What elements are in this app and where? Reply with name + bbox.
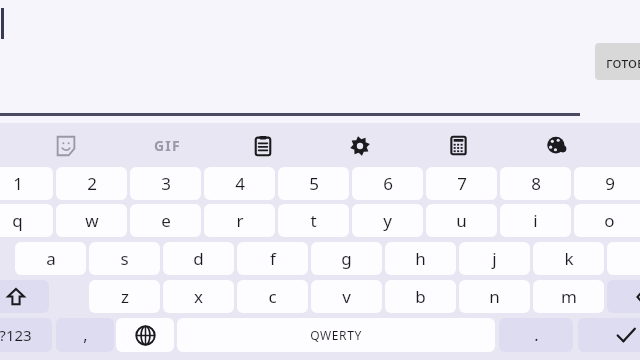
button[interactable]: x xyxy=(163,280,234,313)
button[interactable]: e xyxy=(130,204,201,237)
staticText: готово xyxy=(606,52,640,72)
staticText: z xyxy=(121,285,129,308)
button[interactable]: 1 xyxy=(0,167,53,200)
staticText: m xyxy=(561,285,577,308)
button[interactable]: Clipboard xyxy=(241,123,285,168)
button[interactable]: w xyxy=(56,204,127,237)
staticText: h xyxy=(415,247,426,270)
button[interactable]: f xyxy=(237,242,308,275)
button[interactable]: s xyxy=(89,242,160,275)
staticText: c xyxy=(268,285,277,308)
staticText: 1 xyxy=(13,172,23,195)
button[interactable]: GIF xyxy=(145,123,189,168)
staticText: GIF xyxy=(154,136,181,155)
button[interactable]: z xyxy=(89,280,160,313)
staticText: x xyxy=(194,285,203,308)
staticText: q xyxy=(12,209,23,232)
button[interactable]: Number pad xyxy=(436,123,480,168)
button[interactable]: 7 xyxy=(426,167,497,200)
button[interactable]: u xyxy=(426,204,497,237)
staticText: d xyxy=(193,247,204,270)
staticText: g xyxy=(341,247,352,270)
button[interactable]: Shift xyxy=(0,280,49,313)
button[interactable]: Enter xyxy=(578,318,640,352)
button[interactable]: 9 xyxy=(574,167,640,200)
button[interactable]: 8 xyxy=(500,167,571,200)
button[interactable]: i xyxy=(500,204,571,237)
button[interactable]: m xyxy=(533,280,604,313)
staticText: j xyxy=(492,247,497,270)
staticText: w xyxy=(85,209,99,232)
staticText: 2 xyxy=(87,172,97,195)
staticText: QWERTY xyxy=(310,327,362,343)
staticText: r xyxy=(236,209,244,232)
staticText: o xyxy=(604,209,615,232)
button[interactable]: Theme xyxy=(534,123,578,168)
button[interactable]: Space xyxy=(177,318,495,352)
staticText: 6 xyxy=(383,172,393,195)
staticText: 4 xyxy=(235,172,245,195)
button[interactable]: q xyxy=(0,204,53,237)
button[interactable]: v xyxy=(311,280,382,313)
button[interactable]: h xyxy=(385,242,456,275)
button[interactable]: o xyxy=(574,204,640,237)
button[interactable]: Comma xyxy=(56,318,114,352)
staticText: e xyxy=(161,209,171,232)
button[interactable]: n xyxy=(459,280,530,313)
staticText: 5 xyxy=(309,172,319,195)
staticText: 3 xyxy=(161,172,171,195)
staticText: ?123 xyxy=(0,325,32,345)
button[interactable]: 6 xyxy=(352,167,423,200)
button[interactable]: d xyxy=(163,242,234,275)
button[interactable]: Stickers xyxy=(44,123,88,168)
button[interactable]: Backspace xyxy=(607,280,640,313)
staticText: v xyxy=(342,285,351,308)
staticText: . xyxy=(534,324,539,346)
button[interactable]: c xyxy=(237,280,308,313)
button[interactable]: j xyxy=(459,242,530,275)
button[interactable]: Change keyboard xyxy=(116,318,174,352)
button[interactable]: готово xyxy=(595,43,640,80)
staticText: b xyxy=(415,285,426,308)
staticText: n xyxy=(489,285,500,308)
button[interactable]: Settings xyxy=(338,123,382,168)
button[interactable]: 4 xyxy=(204,167,275,200)
staticText: i xyxy=(533,209,538,232)
staticText: 7 xyxy=(457,172,467,195)
button[interactable]: 2 xyxy=(56,167,127,200)
button[interactable]: a xyxy=(15,242,86,275)
staticText: a xyxy=(46,247,56,270)
staticText: k xyxy=(564,247,574,270)
button[interactable]: b xyxy=(385,280,456,313)
button[interactable]: g xyxy=(311,242,382,275)
button[interactable]: Period xyxy=(499,318,573,352)
staticText: 8 xyxy=(531,172,541,195)
staticText: u xyxy=(456,209,467,232)
button[interactable]: 3 xyxy=(130,167,201,200)
button[interactable]: Symbols xyxy=(0,318,52,352)
button[interactable]: k xyxy=(533,242,604,275)
button[interactable]: 5 xyxy=(278,167,349,200)
button[interactable]: y xyxy=(352,204,423,237)
button[interactable]: r xyxy=(204,204,275,237)
button[interactable]: t xyxy=(278,204,349,237)
staticText: f xyxy=(270,247,276,270)
staticText: 9 xyxy=(605,172,615,195)
staticText: t xyxy=(310,209,317,232)
staticText: s xyxy=(120,247,129,270)
staticText: y xyxy=(383,209,392,232)
staticText: , xyxy=(83,324,88,346)
